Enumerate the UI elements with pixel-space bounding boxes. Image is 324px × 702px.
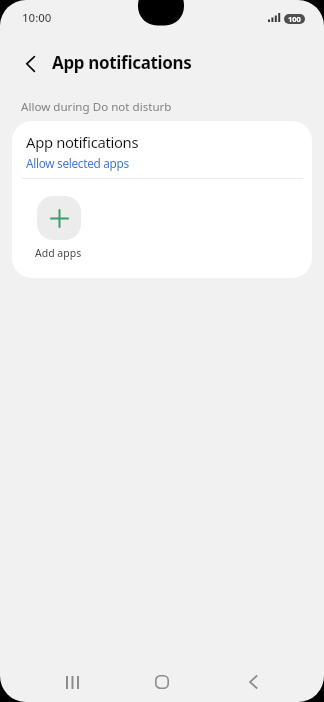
staticText: App notifications xyxy=(52,51,192,74)
staticText: Allow during Do not disturb xyxy=(21,99,172,115)
staticText: App notifications xyxy=(26,132,139,152)
staticText: Allow selected apps xyxy=(26,155,129,171)
button[interactable] xyxy=(16,51,44,77)
staticText: Add apps xyxy=(35,246,82,260)
button[interactable]: Add apps xyxy=(24,196,93,260)
button[interactable] xyxy=(233,662,273,702)
button[interactable]: App notifications xyxy=(26,132,139,171)
button[interactable] xyxy=(52,662,92,702)
staticText: 100 xyxy=(288,14,301,24)
button[interactable] xyxy=(142,662,182,702)
staticText: 10:00 xyxy=(22,10,52,26)
